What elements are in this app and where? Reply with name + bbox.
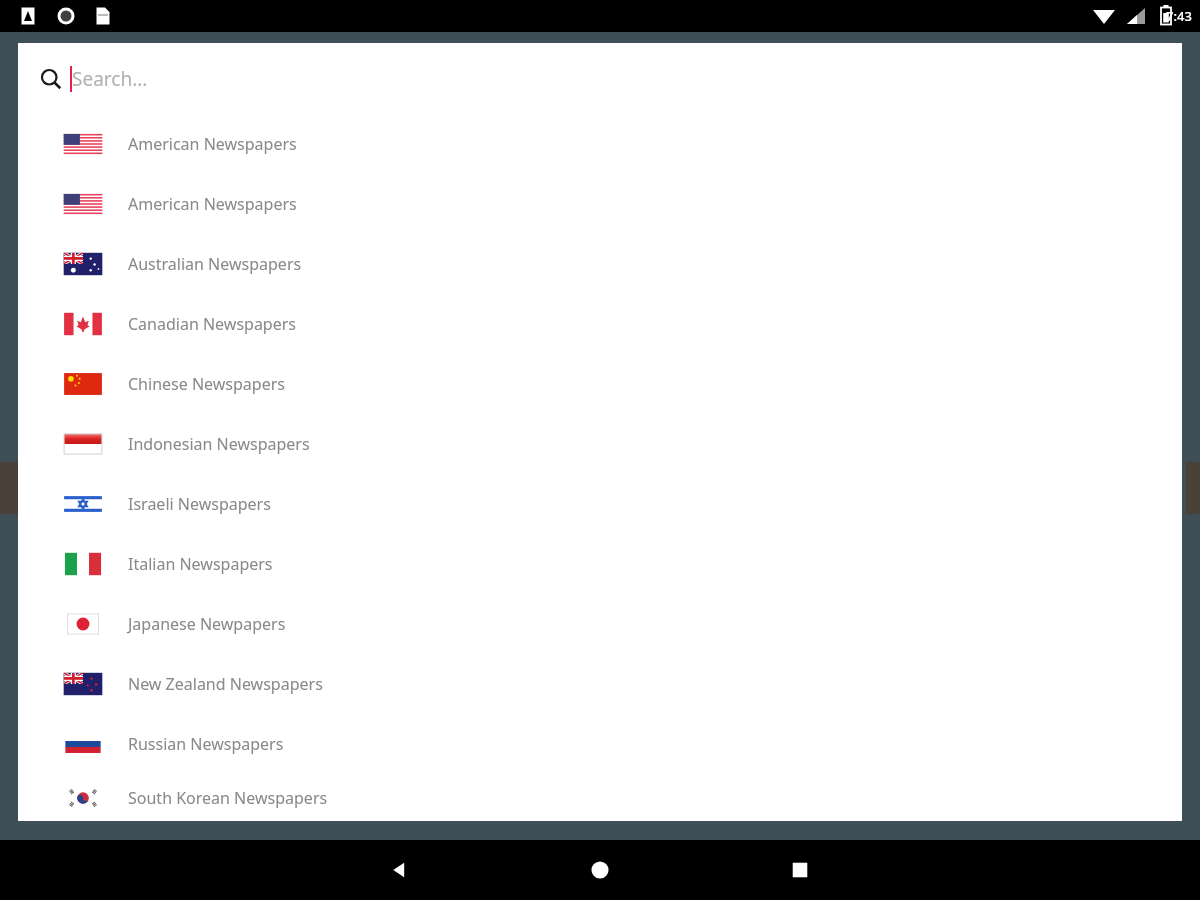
button[interactable]: Recent apps — [770, 840, 830, 900]
button[interactable]: Japanese Newpapers — [18, 594, 1182, 654]
staticText: Israeli Newspapers — [128, 493, 271, 515]
button[interactable]: Canadian Newspapers — [18, 294, 1182, 354]
staticText: New Zealand Newspapers — [128, 673, 323, 695]
staticText: Chinese Newspapers — [128, 373, 285, 395]
staticText: Russian Newspapers — [128, 733, 284, 755]
staticText: Australian Newspapers — [128, 253, 302, 275]
button[interactable]: Italian Newspapers — [18, 534, 1182, 594]
staticText: Canadian Newspapers — [128, 313, 297, 335]
button[interactable]: Back — [370, 840, 430, 900]
staticText: Japanese Newpapers — [128, 613, 286, 635]
button[interactable]: Search... — [18, 43, 1182, 114]
button[interactable]: Chinese Newspapers — [18, 354, 1182, 414]
staticText: 7:43 — [1166, 7, 1192, 25]
staticText: Search... — [72, 66, 148, 92]
staticText: American Newspapers — [128, 133, 297, 155]
button[interactable]: Home — [570, 840, 630, 900]
staticText: South Korean Newspapers — [128, 787, 328, 809]
staticText: Indonesian Newspapers — [128, 433, 310, 455]
button[interactable]: American Newspapers — [18, 114, 1182, 174]
staticText: Italian Newspapers — [128, 553, 273, 575]
staticText: American Newspapers — [128, 193, 297, 215]
button[interactable]: American Newspapers — [18, 174, 1182, 234]
button[interactable]: Indonesian Newspapers — [18, 414, 1182, 474]
button[interactable]: New Zealand Newspapers — [18, 654, 1182, 714]
button[interactable]: South Korean Newspapers — [18, 774, 1182, 821]
button[interactable]: Israeli Newspapers — [18, 474, 1182, 534]
button[interactable]: Russian Newspapers — [18, 714, 1182, 774]
button[interactable]: Australian Newspapers — [18, 234, 1182, 294]
